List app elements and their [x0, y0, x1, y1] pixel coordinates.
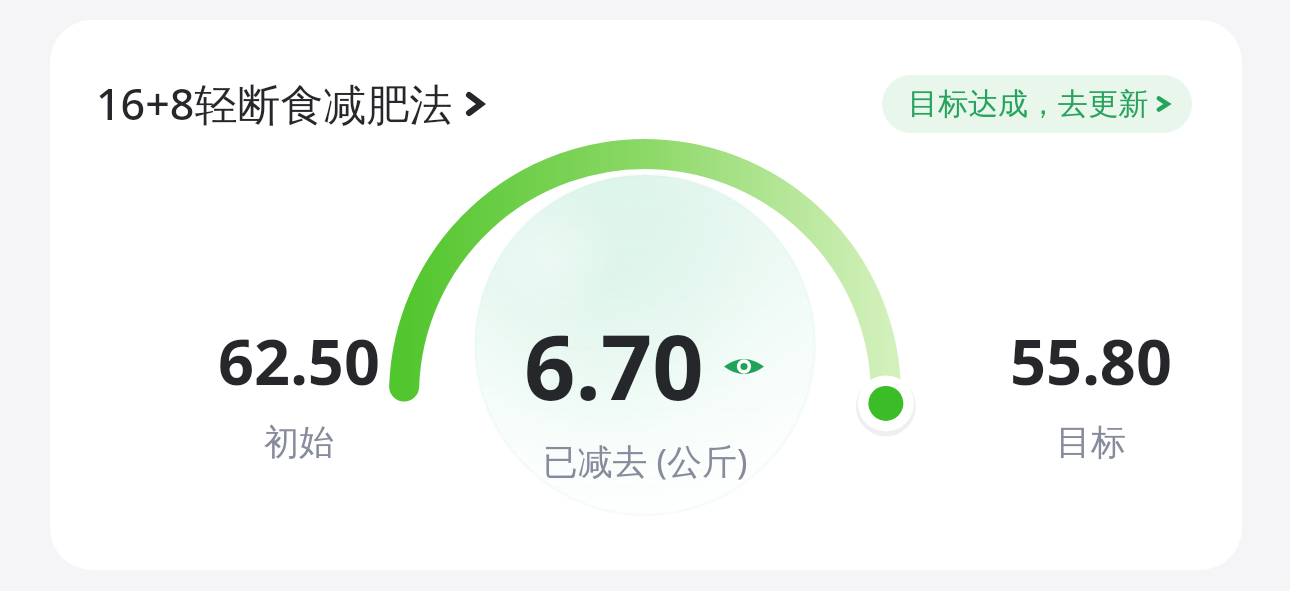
staticText: 初始 [264, 420, 334, 464]
button[interactable]: 55.80 [991, 318, 1191, 464]
staticText: 6.70 [524, 304, 704, 427]
button[interactable]: 16+8轻断食减肥法 [96, 68, 485, 139]
button[interactable]: Toggle weight visibility [722, 348, 766, 384]
staticText: 16+8轻断食减肥法 [96, 74, 453, 133]
staticText: 目标 [1056, 420, 1126, 464]
staticText: 目标达成，去更新 [908, 85, 1148, 123]
button[interactable]: 目标达成，去更新 [882, 75, 1192, 133]
button[interactable]: 62.50 [199, 318, 399, 464]
staticText: 62.50 [218, 318, 380, 404]
staticText: 55.80 [1010, 318, 1172, 404]
staticText: 已减去 (公斤) [542, 437, 748, 485]
